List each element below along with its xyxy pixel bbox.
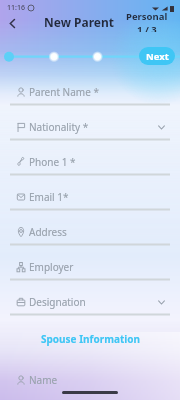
button[interactable]: Name [10,358,170,393]
button[interactable]: Parent Name * [10,70,170,105]
button[interactable]: Back [2,13,23,34]
staticText: Address [29,225,165,239]
button[interactable]: Designation [10,280,170,315]
staticText: Name [29,373,165,387]
button[interactable]: Address [10,210,170,245]
staticText: Employer [29,260,165,274]
staticText: 11:16 [7,3,25,13]
staticText: Nationality * [29,120,158,134]
staticText: Phone 1 * [29,155,165,169]
button[interactable]: Phone 1 * [10,140,170,175]
button[interactable]: Personal [126,10,168,32]
staticText: Spouse Information [41,332,140,346]
staticText: Parent Name * [29,85,165,99]
button[interactable]: Nationality * [10,105,170,140]
staticText: Personal [126,10,168,23]
button[interactable]: New Parent [44,14,115,30]
staticText: New Parent [44,14,115,30]
button[interactable]: Next [139,47,175,65]
staticText: Next [146,50,169,63]
button[interactable]: Email 1* [10,175,170,210]
button[interactable]: Employer [10,245,170,280]
staticText: Email 1* [29,190,165,204]
staticText: Designation [29,295,158,309]
button[interactable]: Spouse Information [41,332,140,346]
staticText: 1 / 3 [137,23,157,32]
